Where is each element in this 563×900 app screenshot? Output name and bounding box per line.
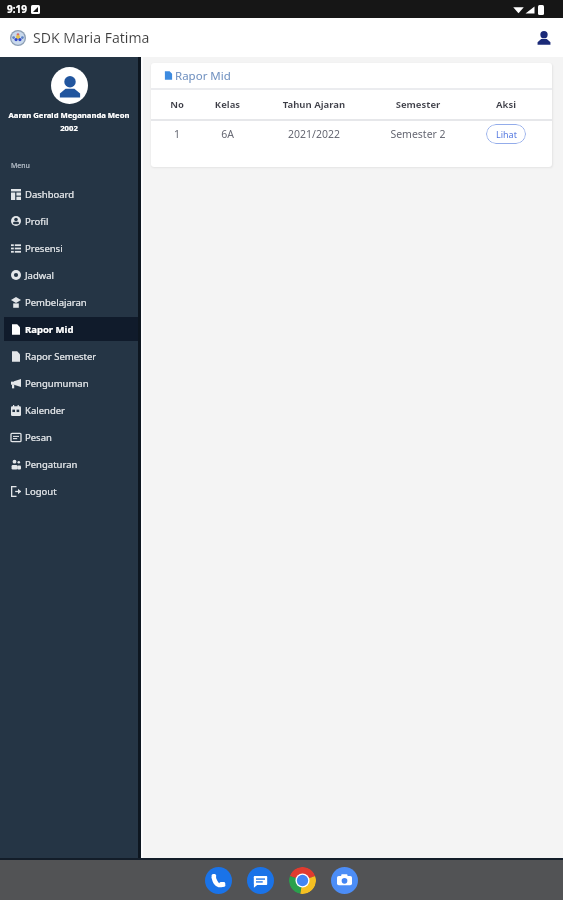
- button[interactable]: Lihat: [486, 124, 526, 144]
- staticText: Profil: [25, 215, 49, 228]
- button[interactable]: Account: [531, 25, 557, 51]
- staticText: SDK Maria Fatima: [33, 28, 150, 47]
- staticText: Pembelajaran: [25, 296, 87, 309]
- staticText: 6A: [203, 127, 252, 141]
- button[interactable]: Profil: [4, 209, 138, 233]
- button[interactable]: Rapor Semester: [4, 344, 138, 368]
- staticText: Dashboard: [25, 188, 75, 201]
- staticText: Semester 2: [376, 127, 460, 141]
- staticText: Presensi: [25, 242, 63, 255]
- button[interactable]: Messages: [247, 867, 274, 894]
- staticText: 2021/2022: [252, 127, 376, 141]
- staticText: Menu: [11, 161, 30, 171]
- staticText: Logout: [25, 485, 57, 498]
- button[interactable]: Jadwal: [4, 263, 138, 287]
- staticText: 2002: [0, 123, 138, 133]
- button[interactable]: Logout: [4, 479, 138, 503]
- staticText: Kalender: [25, 404, 66, 417]
- button[interactable]: Chrome: [289, 867, 316, 894]
- staticText: Aksi: [460, 98, 552, 111]
- button[interactable]: Pesan: [4, 425, 138, 449]
- staticText: Pengumuman: [25, 377, 89, 390]
- button[interactable]: Pengumuman: [4, 371, 138, 395]
- staticText: Lihat: [496, 128, 517, 140]
- button[interactable]: Rapor Mid: [4, 317, 138, 341]
- button[interactable]: Pengaturan: [4, 452, 138, 476]
- staticText: 1: [151, 127, 203, 141]
- button[interactable]: Presensi: [4, 236, 138, 260]
- staticText: Pesan: [25, 431, 52, 444]
- staticText: Rapor Mid: [25, 323, 74, 336]
- staticText: Rapor Semester: [25, 350, 97, 363]
- button[interactable]: Camera: [331, 867, 358, 894]
- staticText: No: [151, 98, 203, 111]
- button[interactable]: Phone: [205, 867, 232, 894]
- staticText: Semester: [376, 98, 460, 111]
- staticText: Rapor Mid: [175, 68, 231, 84]
- staticText: Pengaturan: [25, 458, 78, 471]
- staticText: Kelas: [203, 98, 252, 111]
- staticText: Tahun Ajaran: [252, 98, 376, 111]
- staticText: Aaran Gerald Megananda Meon: [0, 110, 138, 120]
- staticText: Jadwal: [25, 269, 55, 282]
- staticText: 9:19: [7, 2, 27, 16]
- button[interactable]: Dashboard: [4, 182, 138, 206]
- button[interactable]: Kalender: [4, 398, 138, 422]
- button[interactable]: Pembelajaran: [4, 290, 138, 314]
